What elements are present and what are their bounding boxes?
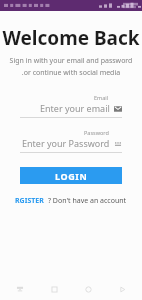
button[interactable]: Keyboard: [11, 280, 29, 298]
button[interactable]: Back: [113, 280, 131, 298]
staticText: Enter your email: [40, 102, 110, 114]
staticText: LOGIN: [55, 170, 88, 182]
staticText: Email: [94, 94, 109, 101]
button[interactable]: RGISTER: [15, 196, 44, 206]
staticText: Welcome Back: [0, 25, 142, 51]
staticText: Enter your Password: [22, 137, 110, 149]
staticText: ? Don't have an account: [48, 196, 127, 206]
button[interactable]: Home: [79, 280, 97, 298]
button[interactable]: Email: [20, 94, 122, 118]
staticText: Password: [84, 129, 109, 136]
staticText: .or continue with social media: [0, 68, 142, 78]
staticText: RGISTER: [15, 196, 44, 206]
staticText: Sign in with your email and password: [0, 56, 142, 66]
button[interactable]: Recents: [45, 280, 63, 298]
button[interactable]: LOGIN: [20, 167, 122, 184]
button[interactable]: Password: [20, 129, 122, 153]
other: Email: [113, 104, 122, 113]
other: Password: [113, 139, 122, 148]
